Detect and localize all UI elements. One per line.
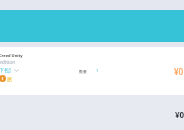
staticText: 数量 bbox=[79, 69, 87, 74]
staticText: 下包] bbox=[0, 67, 11, 74]
staticText: ¥0 bbox=[174, 66, 184, 77]
staticText: ¥0 bbox=[175, 109, 184, 120]
button[interactable]: Order total bbox=[0, 103, 184, 121]
staticText: edition bbox=[0, 59, 16, 66]
button[interactable]: Coupon bbox=[0, 75, 12, 82]
staticText: Creed Unity bbox=[0, 53, 23, 58]
button[interactable]: Choose edition bbox=[0, 67, 19, 74]
staticText: 1 bbox=[96, 68, 99, 73]
button[interactable]: Creed Unity bbox=[0, 47, 184, 95]
staticText: 惠 bbox=[7, 76, 12, 82]
